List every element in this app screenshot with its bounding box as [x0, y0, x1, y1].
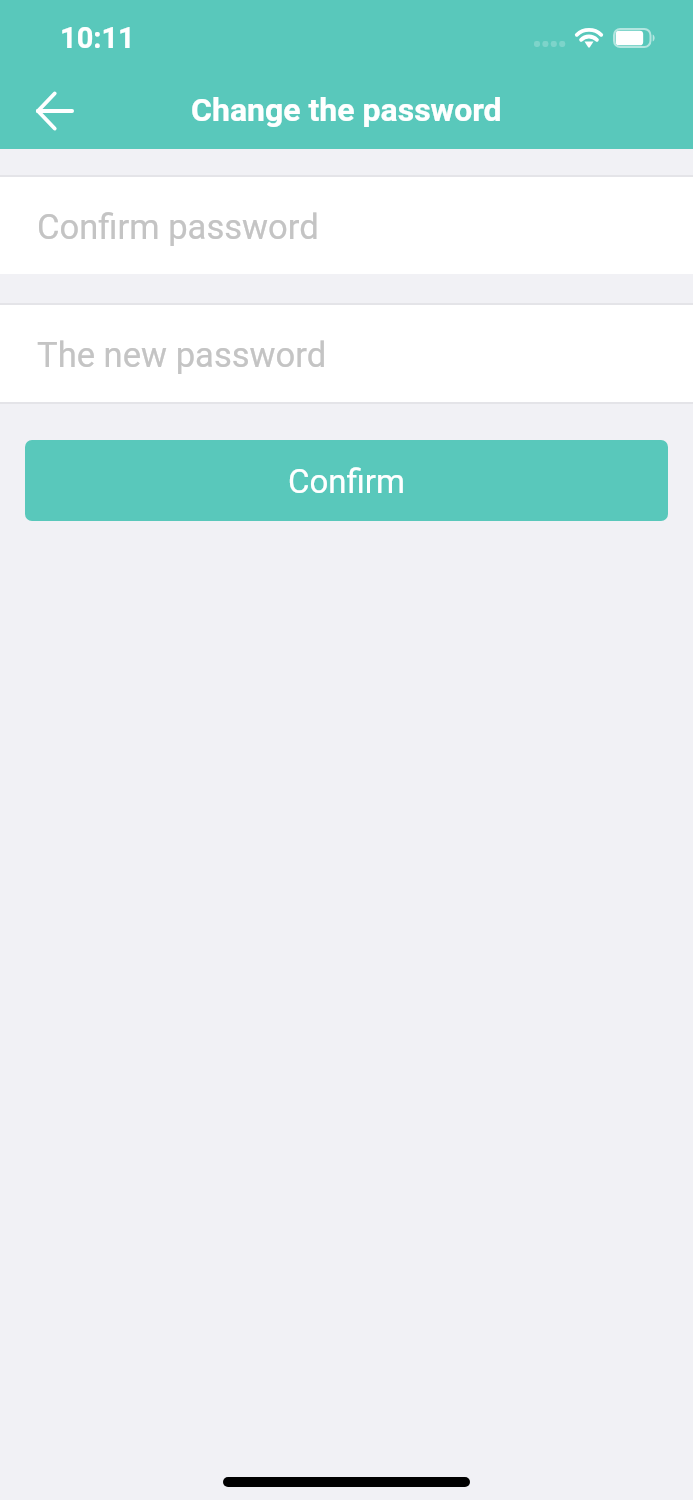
staticText: Change the password	[191, 91, 502, 129]
staticText: The new password	[37, 335, 327, 376]
button[interactable]: Back	[20, 78, 90, 144]
staticText: Confirm password	[37, 207, 319, 248]
button[interactable]: Confirm	[25, 440, 668, 521]
button[interactable]: The new password	[0, 305, 693, 402]
button[interactable]: Confirm password	[0, 177, 693, 274]
staticText: Confirm	[288, 462, 405, 501]
staticText: 10:11	[60, 21, 135, 55]
